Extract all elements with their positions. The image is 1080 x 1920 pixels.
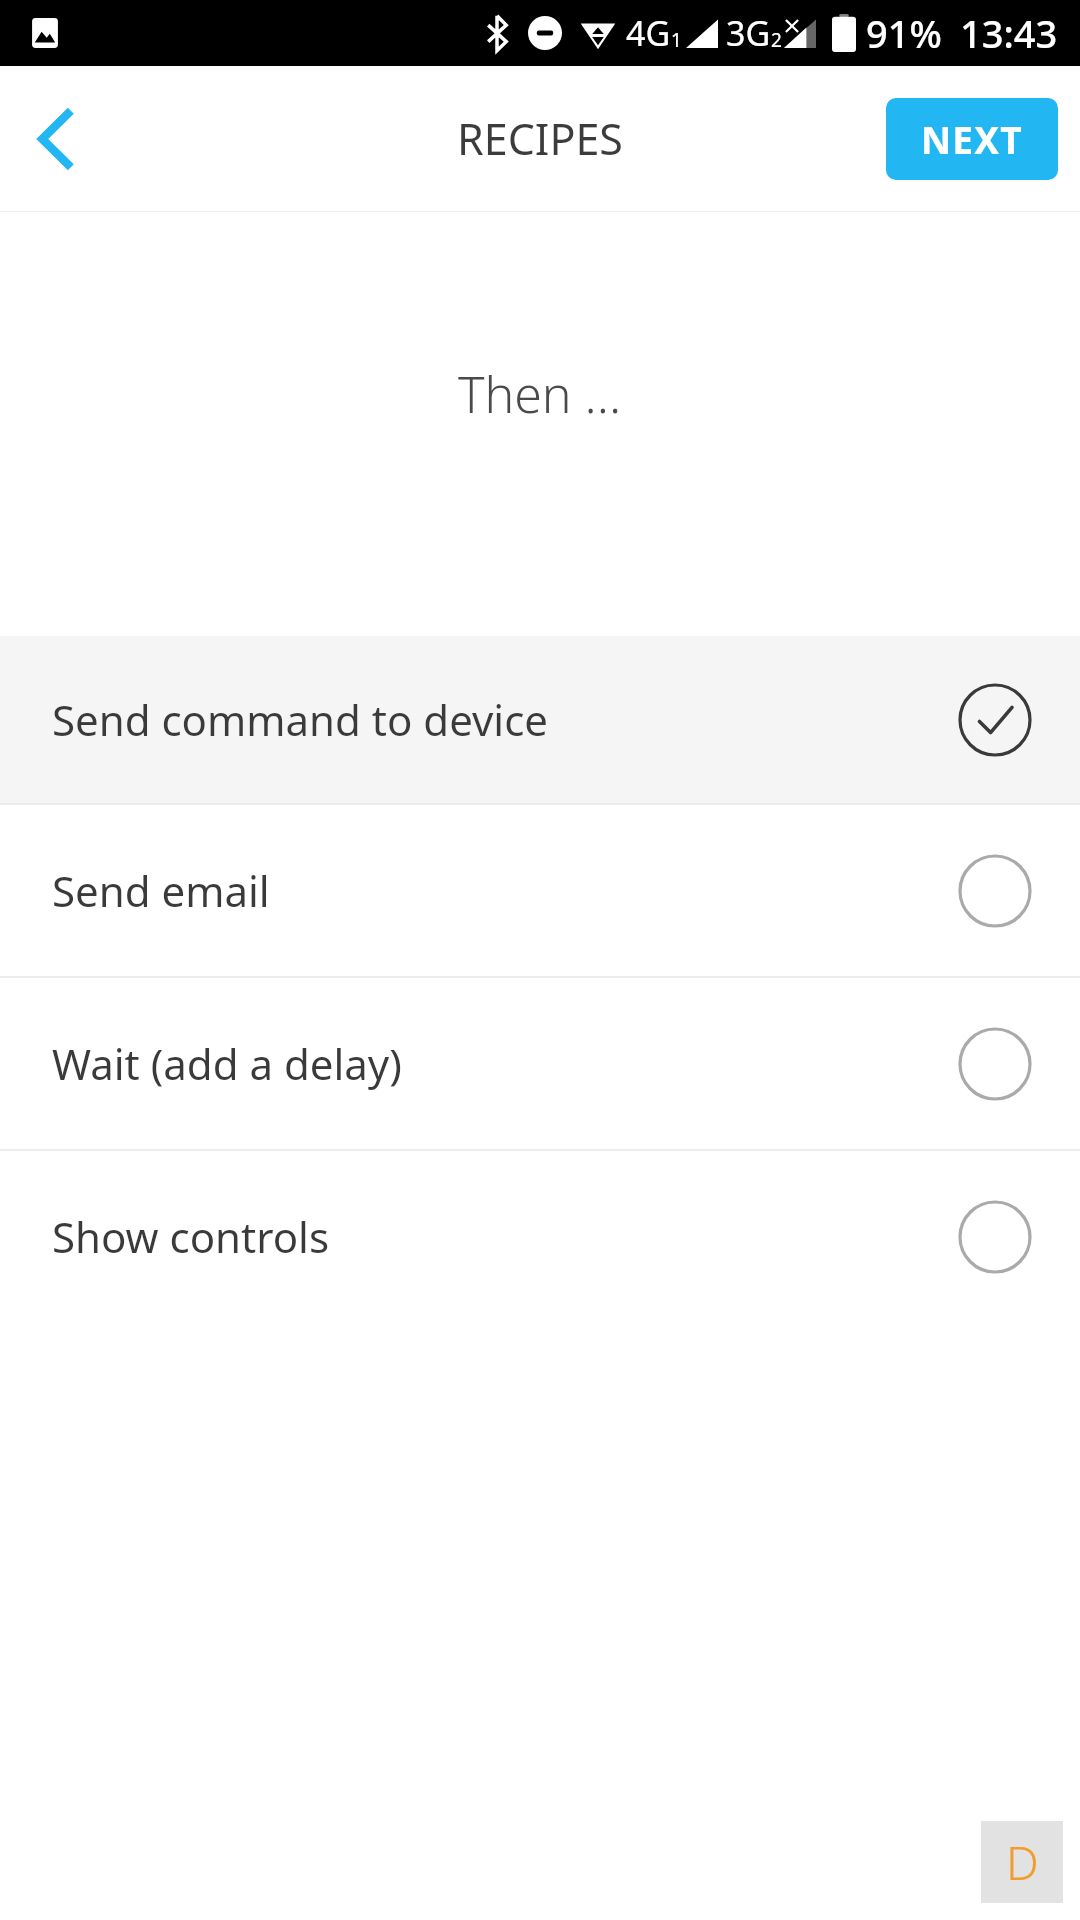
- staticText: Send command to device: [52, 691, 549, 748]
- button[interactable]: Send command to device: [0, 636, 1080, 803]
- staticText: 13:43: [960, 7, 1058, 59]
- button[interactable]: NEXT: [886, 98, 1058, 180]
- staticText: RECIPES: [457, 109, 623, 168]
- staticText: 2: [771, 27, 782, 53]
- staticText: Send email: [52, 862, 270, 919]
- button[interactable]: Send email: [0, 805, 1080, 976]
- staticText: D: [1006, 1831, 1039, 1894]
- staticText: 4G: [626, 10, 671, 56]
- button[interactable]: Wait (add a delay): [0, 978, 1080, 1149]
- staticText: 3G: [726, 10, 771, 56]
- button[interactable]: Back: [0, 84, 110, 194]
- button[interactable]: Show controls: [0, 1151, 1080, 1322]
- staticText: Show controls: [52, 1208, 330, 1265]
- staticText: 91%: [866, 7, 942, 59]
- staticText: Wait (add a delay): [52, 1035, 402, 1092]
- staticText: NEXT: [921, 114, 1023, 164]
- staticText: 1: [671, 27, 682, 53]
- staticText: Then ...: [458, 360, 622, 428]
